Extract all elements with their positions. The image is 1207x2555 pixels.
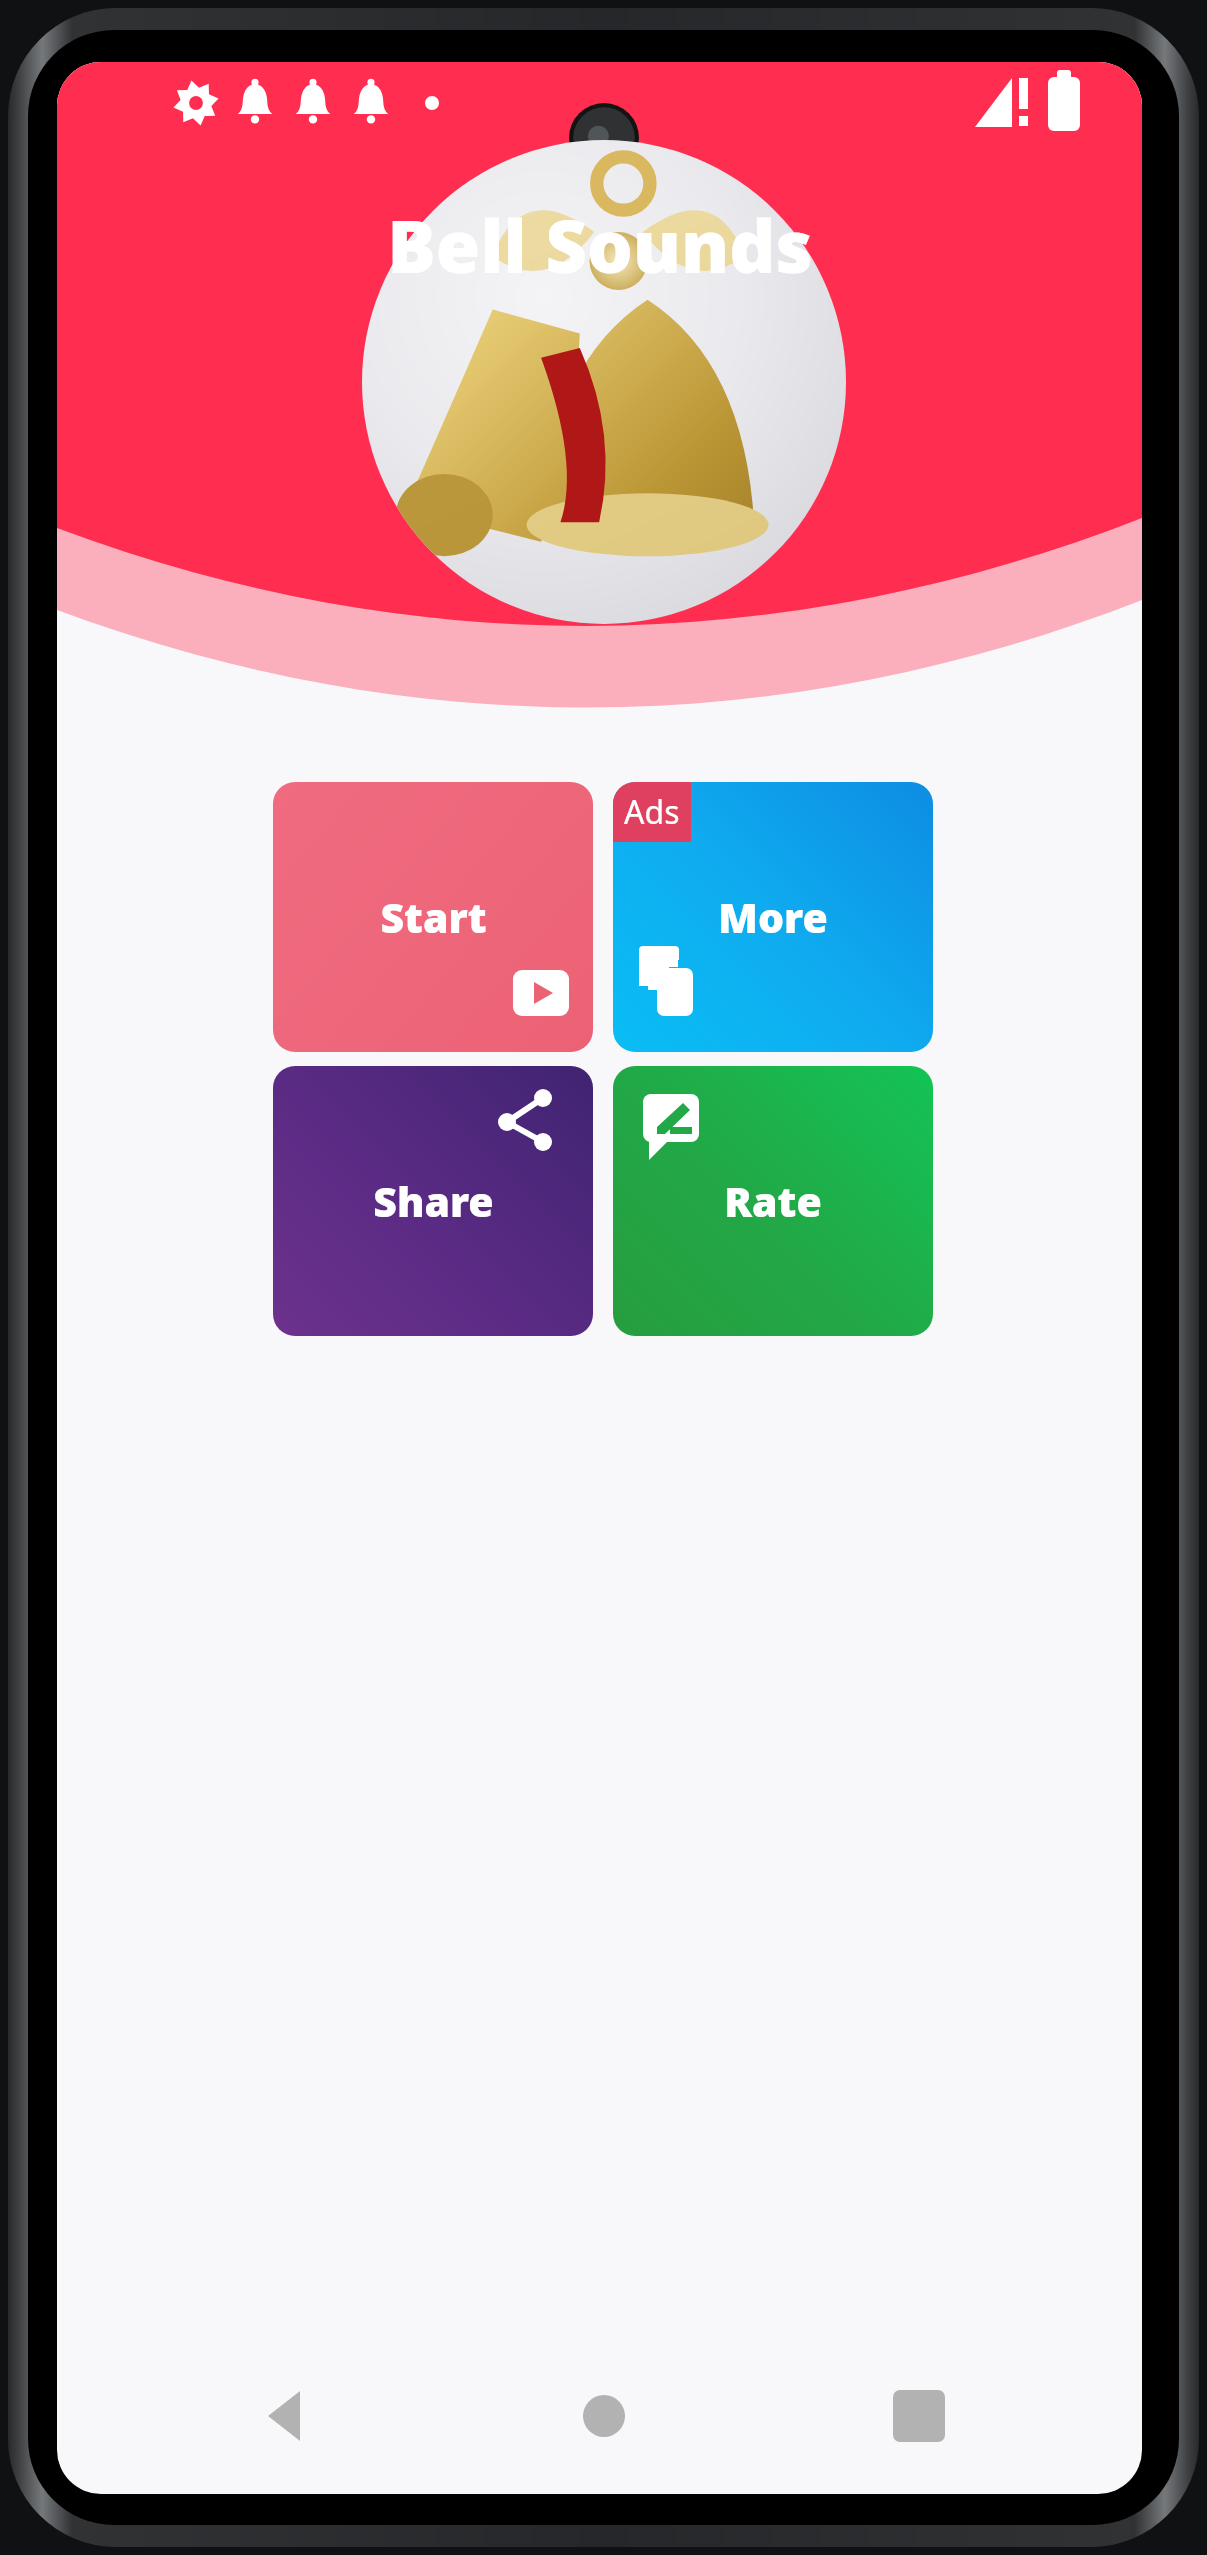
staticText: Rate (724, 1173, 822, 1229)
staticText: Bell Sounds (387, 196, 813, 292)
staticText: Share (373, 1173, 494, 1229)
button[interactable]: Rate (613, 1066, 933, 1336)
button[interactable]: More (613, 782, 933, 1052)
button[interactable]: Start (273, 782, 593, 1052)
staticText: Start (380, 889, 487, 945)
button[interactable]: Share (273, 1066, 593, 1336)
staticText: Ads (624, 790, 680, 834)
staticText: More (718, 889, 828, 945)
